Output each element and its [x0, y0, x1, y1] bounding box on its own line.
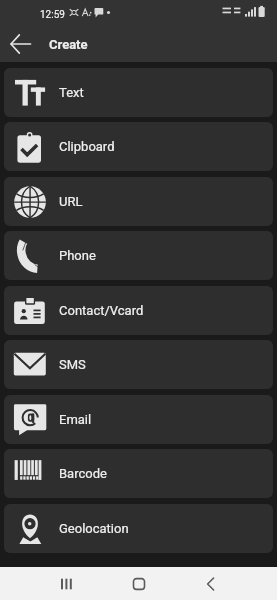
button[interactable]: Barcode: [4, 449, 273, 498]
staticText: Geolocation: [59, 521, 129, 536]
button[interactable]: Contact/Vcard: [4, 286, 273, 335]
button[interactable]: Geolocation: [4, 504, 273, 553]
button[interactable]: Home: [116, 567, 162, 600]
staticText: Clipboard: [59, 139, 115, 154]
button[interactable]: Recents: [44, 567, 90, 600]
staticText: URL: [59, 194, 83, 209]
button[interactable]: Back: [188, 567, 234, 600]
staticText: SMS: [59, 357, 86, 372]
staticText: Text: [59, 85, 84, 100]
button[interactable]: URL: [4, 177, 273, 226]
staticText: Barcode: [59, 466, 107, 481]
button[interactable]: SMS: [4, 340, 273, 389]
button[interactable]: Back: [2, 26, 38, 62]
staticText: Phone: [59, 248, 96, 263]
staticText: 12:59: [40, 9, 65, 21]
button[interactable]: Text: [4, 68, 273, 117]
staticText: Email: [59, 412, 92, 427]
staticText: Contact/Vcard: [59, 303, 144, 318]
button[interactable]: Clipboard: [4, 122, 273, 171]
button[interactable]: Phone: [4, 231, 273, 280]
staticText: Create: [49, 37, 88, 52]
button[interactable]: Email: [4, 395, 273, 444]
